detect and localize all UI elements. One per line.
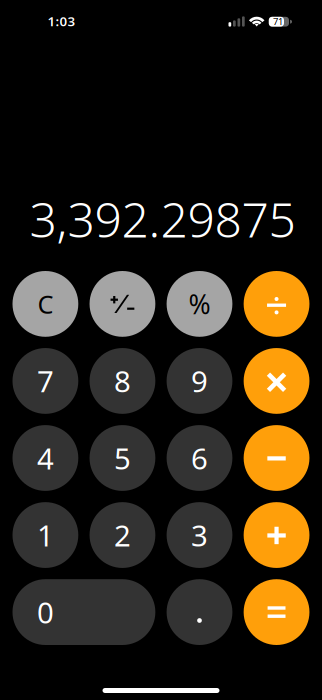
staticText: 2 — [114, 516, 131, 555]
staticText: 1 — [37, 516, 54, 555]
staticText: 7 — [37, 361, 54, 400]
button[interactable]: 8 — [89, 348, 155, 414]
button[interactable]: 3 — [167, 502, 232, 568]
staticText: 3,392.29875 — [29, 187, 295, 251]
button[interactable]: 7 — [12, 348, 78, 414]
staticText: 0 — [37, 593, 54, 632]
button[interactable]: 5 — [89, 425, 155, 491]
staticText: 6 — [191, 438, 208, 477]
button[interactable]: Multiply — [244, 348, 309, 414]
button[interactable]: Minus — [244, 425, 309, 491]
button[interactable]: Plus — [244, 502, 309, 568]
button[interactable]: 4 — [12, 425, 78, 491]
button[interactable]: Plus minus — [89, 271, 155, 337]
staticText: C — [37, 287, 53, 321]
staticText: 9 — [191, 361, 208, 400]
staticText: 3 — [191, 516, 208, 555]
button[interactable]: Divide — [244, 271, 309, 337]
staticText: % — [188, 286, 210, 322]
button[interactable]: 0 — [12, 579, 155, 645]
button[interactable]: % — [167, 271, 232, 337]
staticText: 5 — [114, 438, 131, 477]
staticText: 71 — [273, 15, 283, 28]
button[interactable]: 9 — [167, 348, 232, 414]
button[interactable]: 6 — [167, 425, 232, 491]
button[interactable]: Equals — [244, 579, 309, 645]
button[interactable]: 2 — [89, 502, 155, 568]
staticText: 4 — [37, 438, 54, 477]
button[interactable]: 1 — [12, 502, 78, 568]
staticText: 8 — [114, 361, 131, 400]
staticText: 1:03 — [48, 12, 76, 30]
button[interactable]: Decimal point — [167, 579, 232, 645]
button[interactable]: C — [12, 271, 78, 337]
